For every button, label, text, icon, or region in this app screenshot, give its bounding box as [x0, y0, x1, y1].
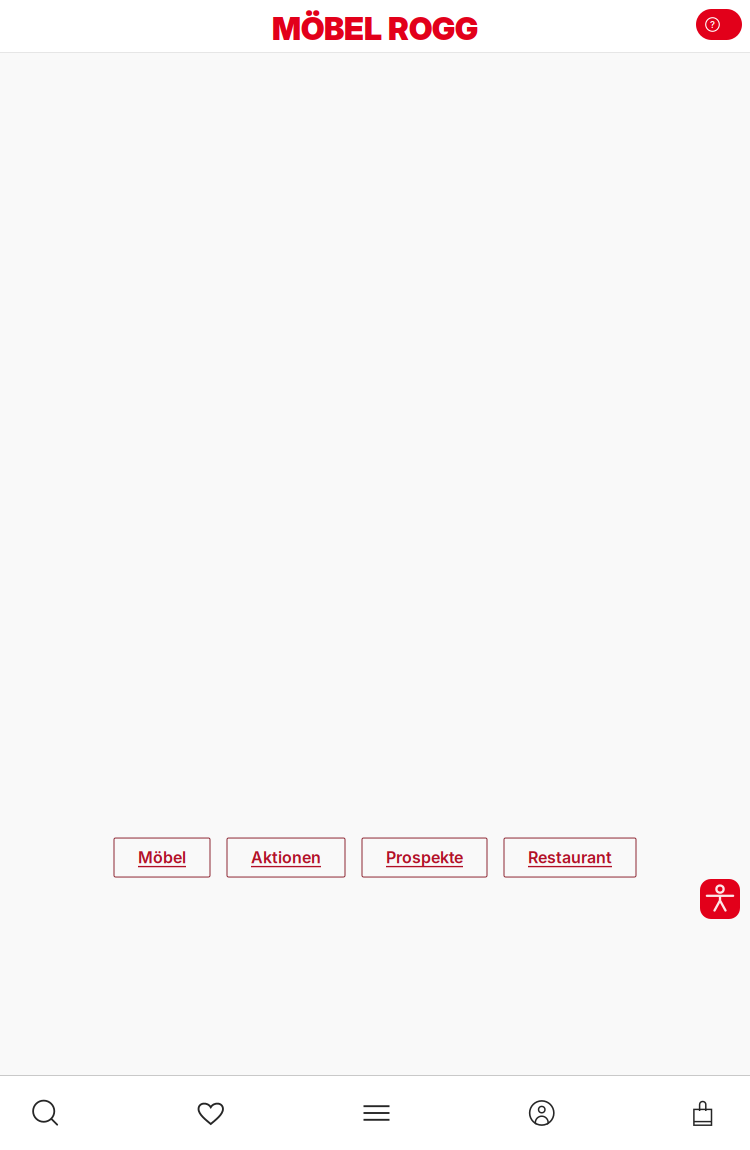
button[interactable]: Aktionen [227, 838, 345, 877]
button[interactable]: Barrierefreiheit [700, 879, 740, 919]
button[interactable]: Hilfe [696, 9, 742, 40]
button[interactable]: Konto [529, 1076, 555, 1150]
button[interactable]: Prospekte [362, 838, 487, 877]
staticText: Prospekte [386, 848, 463, 867]
staticText: Restaurant [528, 848, 612, 867]
button[interactable]: Menü [362, 1076, 390, 1150]
staticText: Aktionen [251, 848, 321, 867]
staticText: Möbel [138, 848, 186, 867]
staticText: ? [710, 19, 715, 30]
button[interactable]: Warenkorb [693, 1076, 713, 1150]
button[interactable]: Suche [32, 1076, 59, 1150]
button[interactable]: Merkzettel [197, 1076, 224, 1150]
button[interactable]: Möbel [114, 838, 210, 877]
button[interactable]: Restaurant [504, 838, 636, 877]
staticText: MÖBEL ROGG [272, 9, 478, 47]
